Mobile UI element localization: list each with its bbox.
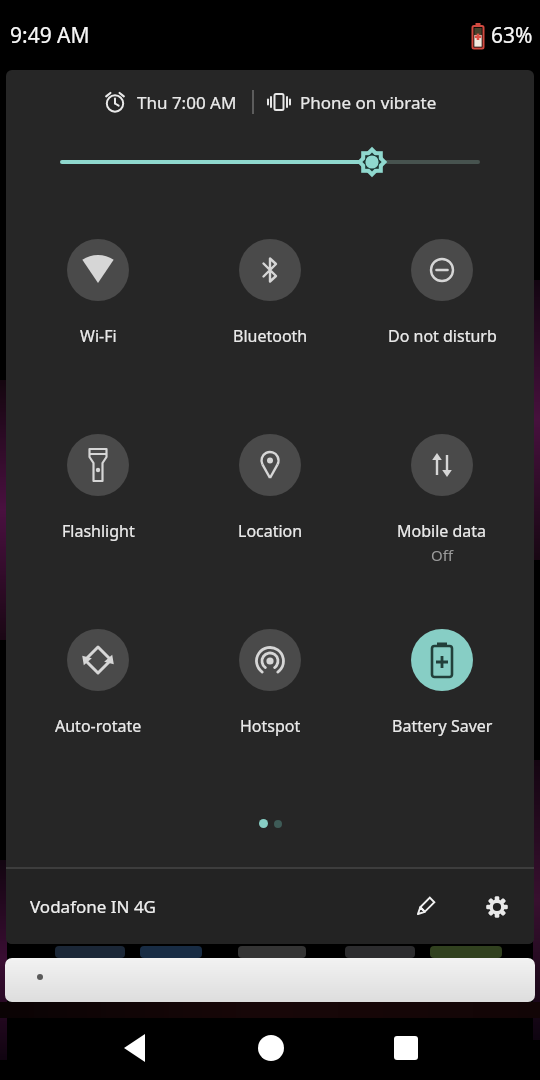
button[interactable] [5, 958, 535, 1002]
staticText: Location [238, 520, 303, 542]
staticText: Thu 7:00 AM [137, 91, 237, 114]
staticText: Vodafone IN 4G [30, 895, 156, 918]
staticText: Bluetooth [233, 325, 308, 347]
button[interactable] [68, 1016, 203, 1080]
button[interactable]: Battery Saver [356, 629, 528, 737]
button[interactable]: Hotspot [184, 629, 356, 737]
button[interactable]: Wi-Fi [12, 239, 184, 347]
staticText: Hotspot [240, 715, 301, 737]
button[interactable] [338, 1016, 473, 1080]
staticText: 9:49 AM [10, 21, 90, 50]
button[interactable] [473, 883, 521, 931]
staticText: Off [431, 545, 454, 565]
staticText: Wi-Fi [80, 325, 117, 347]
button[interactable]: Mobile data [356, 434, 528, 565]
button[interactable] [401, 883, 449, 931]
staticText: Battery Saver [392, 715, 493, 737]
button[interactable]: Bluetooth [184, 239, 356, 347]
button[interactable]: Do not disturb [356, 239, 528, 347]
staticText: Auto-rotate [55, 715, 142, 737]
button[interactable]: Auto-rotate [12, 629, 184, 737]
button[interactable] [203, 1016, 338, 1080]
button[interactable]: Location [184, 434, 356, 542]
staticText: Flashlight [62, 520, 135, 542]
staticText: Phone on vibrate [300, 91, 437, 114]
button[interactable]: Flashlight [12, 434, 184, 542]
staticText: 63% [491, 21, 533, 50]
staticText: Do not disturb [388, 325, 497, 347]
staticText: Mobile data [397, 520, 487, 542]
